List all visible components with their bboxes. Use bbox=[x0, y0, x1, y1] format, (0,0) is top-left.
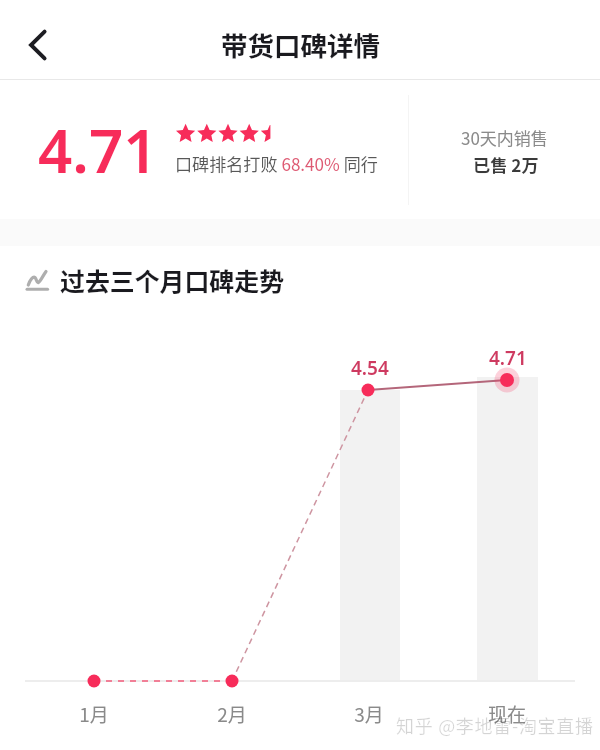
staticText: 过去三个月口碑走势 bbox=[60, 262, 285, 298]
staticText: 30天内销售 bbox=[461, 125, 548, 150]
staticText: 3月 bbox=[329, 700, 409, 728]
staticText: 已售 2万 bbox=[473, 152, 539, 177]
button[interactable]: Back bbox=[11, 20, 63, 72]
staticText: 4.71 bbox=[489, 345, 527, 371]
button[interactable]: 4.71 bbox=[0, 80, 600, 219]
staticText: 4.54 bbox=[351, 355, 389, 381]
staticText: 1月 bbox=[54, 700, 134, 728]
staticText: 2月 bbox=[192, 700, 272, 728]
staticText: 知乎 @李地雷-淘宝直播 bbox=[396, 712, 594, 738]
staticText: 4.71 bbox=[38, 109, 158, 191]
staticText: 口碑排名打败 68.40% 同行 bbox=[175, 151, 378, 176]
staticText: 带货口碑详情 bbox=[221, 25, 380, 63]
staticText: 现在 bbox=[467, 700, 547, 728]
